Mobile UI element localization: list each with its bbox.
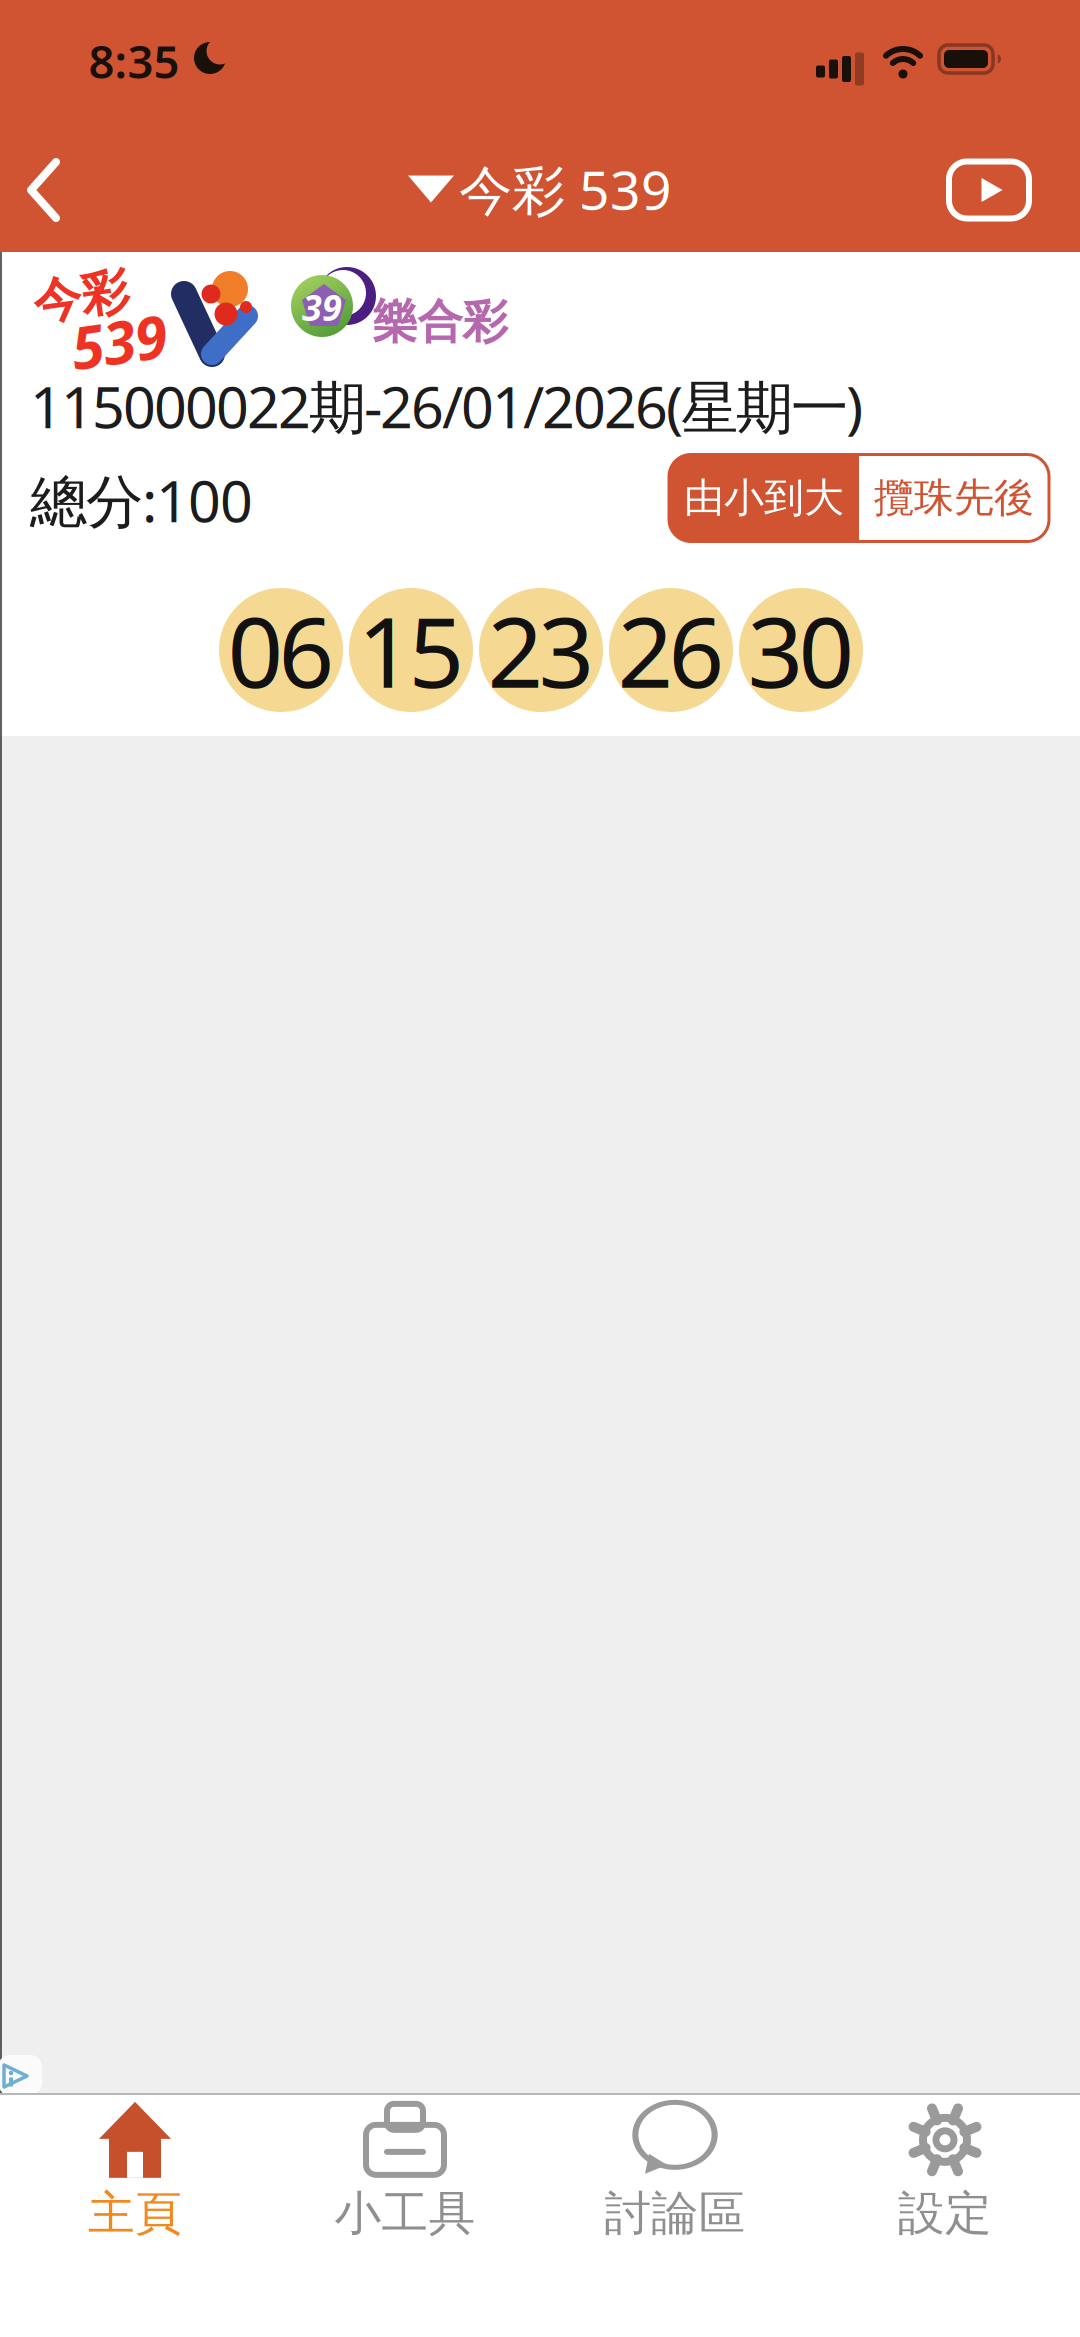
staticText: 23 xyxy=(487,585,594,715)
button[interactable]: 討論區 xyxy=(545,2097,805,2247)
staticText: 今彩 539 xyxy=(459,154,672,224)
staticText: 115000022期-26/01/2026(星期一) xyxy=(30,368,863,444)
button[interactable]: 設定 xyxy=(815,2097,1075,2247)
staticText: 總分:100 xyxy=(30,462,253,538)
button[interactable]: 由小到大 xyxy=(669,454,859,541)
button[interactable]: 開獎直播 xyxy=(949,161,1029,218)
staticText: 攬珠先後 xyxy=(874,473,1034,522)
staticText: 15 xyxy=(357,585,464,715)
button[interactable]: 主頁 xyxy=(5,2097,265,2247)
staticText: 由小到大 xyxy=(684,473,844,522)
button[interactable]: 廣告資訊 xyxy=(0,2055,42,2095)
staticText: 討論區 xyxy=(604,2185,745,2242)
staticText: 主頁 xyxy=(88,2185,182,2242)
staticText: 設定 xyxy=(898,2185,992,2242)
staticText: 8:35 xyxy=(88,31,179,91)
staticText: 39 xyxy=(302,283,342,331)
button[interactable]: 攬珠先後 xyxy=(859,454,1049,541)
button[interactable]: 選擇彩種 xyxy=(408,154,672,224)
staticText: 今彩 xyxy=(33,267,129,326)
button[interactable]: 小工具 xyxy=(275,2097,535,2247)
staticText: 樂合彩 xyxy=(372,294,507,350)
staticText: 539 xyxy=(71,302,167,380)
button[interactable]: 返回 xyxy=(26,157,62,223)
staticText: 小工具 xyxy=(334,2185,475,2242)
staticText: 26 xyxy=(617,585,724,715)
staticText: 30 xyxy=(747,585,854,715)
staticText: 06 xyxy=(227,585,334,715)
